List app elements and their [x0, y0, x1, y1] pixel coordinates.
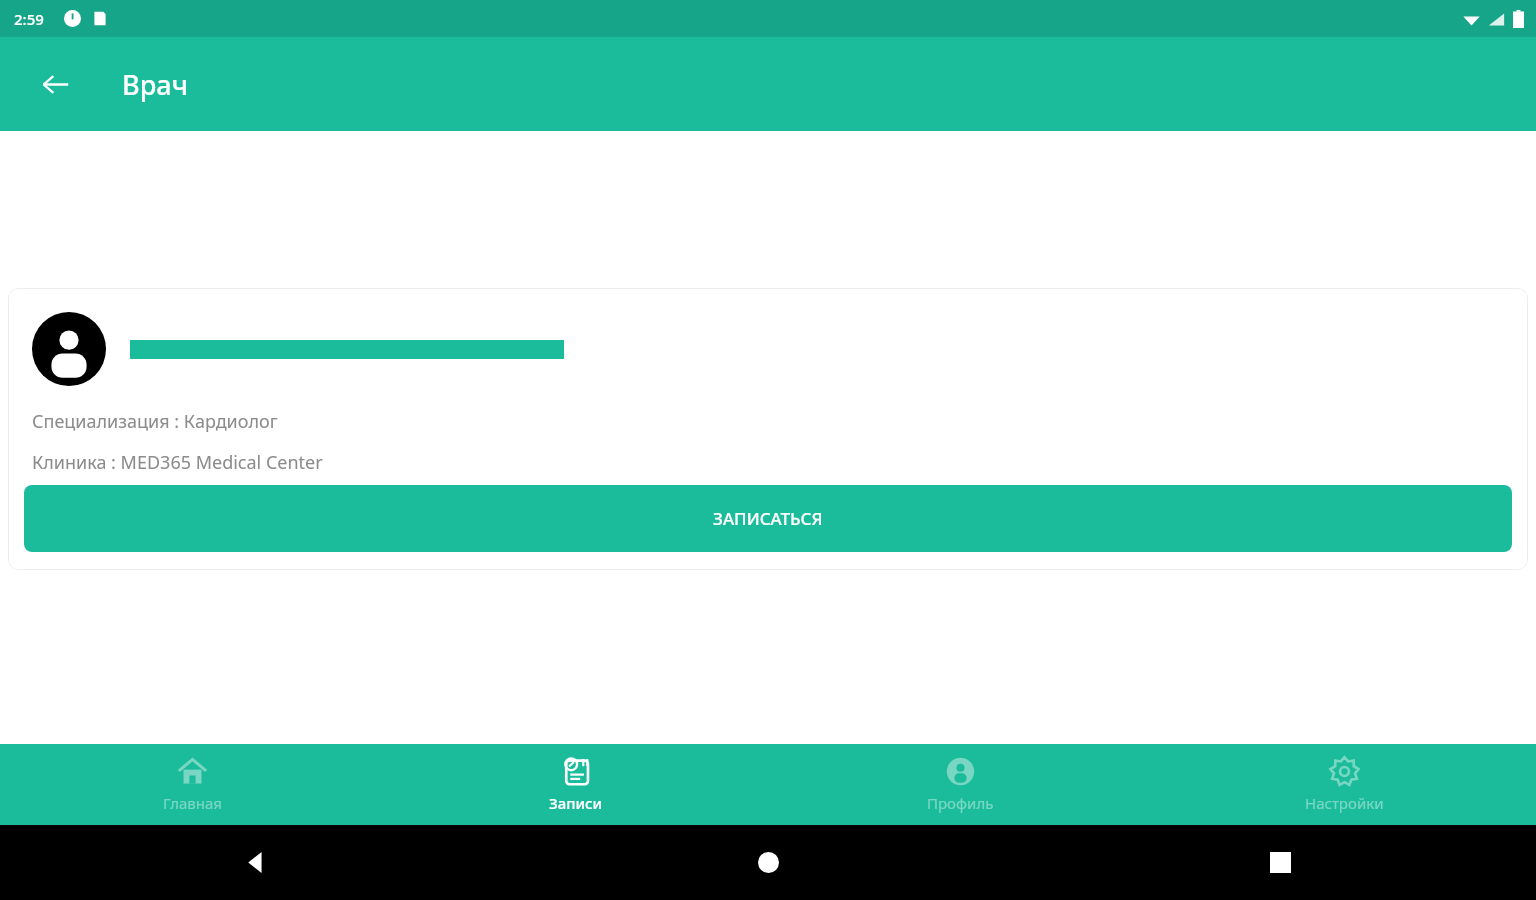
- staticText: Настройки: [1305, 793, 1384, 813]
- button[interactable]: Главная: [0, 744, 384, 825]
- button[interactable]: Home: [512, 825, 1024, 900]
- staticText: Главная: [163, 793, 222, 813]
- button[interactable]: Recent apps: [1024, 825, 1536, 900]
- staticText: ЗАПИСАТЬСЯ: [713, 507, 823, 530]
- staticText: Врач: [122, 66, 188, 103]
- button[interactable]: Back: [31, 60, 79, 108]
- staticText: Профиль: [927, 793, 994, 813]
- staticText: Специализация : Кардиолог: [32, 409, 278, 434]
- button[interactable]: ЗАПИСАТЬСЯ: [24, 485, 1512, 552]
- staticText: Клиника : MED365 Medical Center: [32, 450, 323, 475]
- button[interactable]: Back: [0, 825, 512, 900]
- button[interactable]: Записи: [384, 744, 768, 825]
- button[interactable]: Настройки: [1152, 744, 1536, 825]
- button[interactable]: Профиль: [768, 744, 1152, 825]
- staticText: Записи: [549, 793, 603, 813]
- staticText: 2:59: [14, 9, 44, 29]
